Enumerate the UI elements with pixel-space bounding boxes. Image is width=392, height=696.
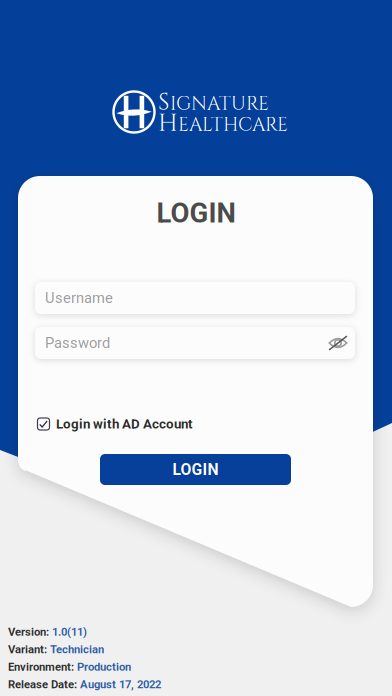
staticText: Variant:: [8, 643, 47, 656]
staticText: Password: [45, 334, 110, 352]
staticText: HEALTHCARE: [158, 108, 288, 139]
button[interactable]: Show password: [328, 334, 348, 351]
staticText: SIGNATURE: [158, 87, 269, 118]
staticText: August 17, 2022: [77, 678, 161, 691]
staticText: Version:: [8, 625, 49, 639]
button[interactable]: Login with AD Account: [37, 414, 357, 434]
staticText: LOGIN: [156, 197, 235, 229]
staticText: Release Date:: [8, 678, 77, 691]
staticText: 1.0(11): [49, 625, 87, 639]
staticText: Production: [74, 660, 131, 674]
staticText: LOGIN: [172, 460, 218, 479]
button[interactable]: LOGIN: [100, 454, 291, 485]
staticText: Login with AD Account: [56, 416, 193, 432]
staticText: Environment:: [8, 660, 74, 674]
staticText: Username: [45, 289, 113, 307]
staticText: Technician: [47, 643, 104, 656]
